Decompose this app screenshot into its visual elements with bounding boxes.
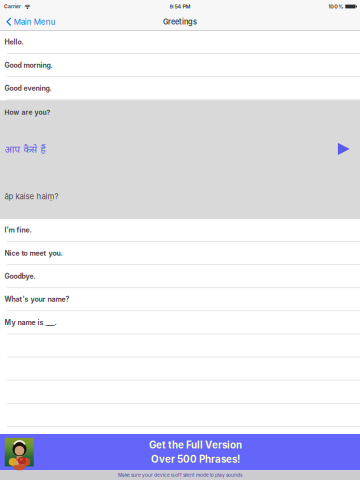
staticText: Goodbye.: [5, 272, 36, 280]
staticText: Over 500 Phrases!: [151, 453, 240, 465]
staticText: How are you?: [5, 108, 51, 116]
staticText: Nice to meet you.: [5, 249, 63, 257]
button[interactable]: Hello.: [0, 31, 360, 54]
staticText: My name is ___.: [5, 318, 57, 327]
button[interactable]: Good evening.: [0, 77, 360, 100]
staticText: Good evening.: [5, 84, 52, 92]
staticText: Good morning.: [5, 61, 53, 69]
button[interactable]: My name is ___.: [0, 311, 360, 334]
staticText: Greetings: [163, 17, 197, 26]
staticText: āp kaise haiṃ?: [5, 192, 59, 201]
staticText: Hello.: [5, 38, 24, 46]
button[interactable]: Goodbye.: [0, 265, 360, 288]
staticText: I'm fine.: [5, 226, 32, 234]
button[interactable]: Good morning.: [0, 54, 360, 77]
staticText: 100%: [328, 3, 343, 10]
staticText: What's your name?: [5, 295, 70, 304]
staticText: 9:54 PM: [169, 3, 190, 10]
button[interactable]: Main Menu: [0, 13, 62, 30]
button[interactable]: Nice to meet you.: [0, 242, 360, 265]
staticText: Make sure your device is off silent mode…: [118, 472, 242, 478]
staticText: Get the Full Version: [149, 439, 242, 451]
button[interactable]: How are you?: [0, 100, 360, 219]
staticText: आप कैसे हैं: [5, 142, 46, 156]
staticText: Main Menu: [14, 17, 56, 27]
button[interactable]: I'm fine.: [0, 219, 360, 242]
button[interactable]: Get the Full Version: [0, 434, 360, 470]
staticText: Carrier: [4, 3, 21, 9]
button[interactable]: What's your name?: [0, 288, 360, 311]
